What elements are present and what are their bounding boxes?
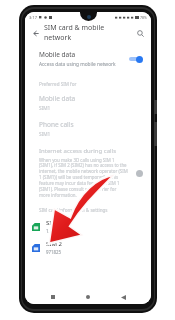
button[interactable]: Toggle off [128, 169, 143, 177]
button[interactable]: Back [116, 290, 130, 304]
staticText: 1… [46, 228, 52, 234]
staticText: Mobile data [39, 94, 76, 103]
button[interactable]: Internet access during calls [25, 147, 151, 199]
staticText: SIM card information & settings [39, 207, 108, 213]
button[interactable]: SIM 2 [25, 240, 151, 255]
staticText: 3:17 [29, 15, 37, 20]
staticText: When you make 3D calls using SIM 1 (SIM1… [39, 157, 128, 199]
button[interactable]: Recents [46, 290, 60, 304]
staticText: SIM 2 [46, 240, 62, 248]
staticText: SIM1 [39, 131, 51, 138]
staticText: Access data using mobile network [39, 61, 116, 68]
staticText: SIM 1 [46, 219, 62, 227]
button[interactable]: Toggle on [128, 55, 143, 63]
button[interactable]: Mobile data [25, 94, 151, 112]
staticText: Preferred SIM for [39, 81, 77, 87]
button[interactable]: Mobile data [25, 43, 151, 74]
button[interactable]: Search [133, 26, 147, 40]
button[interactable]: SIM 1 [25, 219, 151, 234]
staticText: Phone calls [39, 120, 74, 129]
staticText: SIM card & mobile network [44, 23, 133, 43]
staticText: SIM1 [39, 105, 51, 112]
button[interactable]: Home [81, 290, 95, 304]
staticText: Internet access during calls [39, 147, 117, 155]
button[interactable]: Phone calls [25, 120, 151, 138]
staticText: 971825 [46, 249, 62, 255]
staticText: Mobile data [39, 50, 76, 59]
button[interactable]: Back [28, 26, 42, 40]
staticText: 78% [140, 15, 147, 20]
